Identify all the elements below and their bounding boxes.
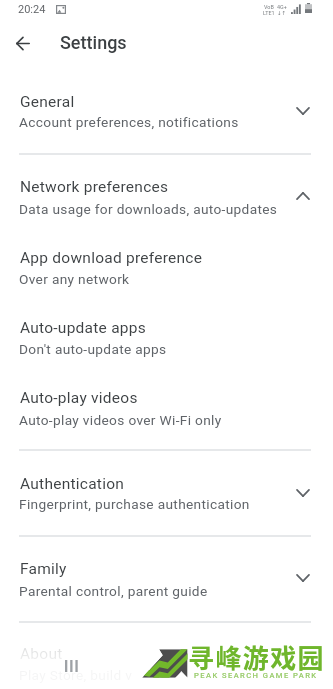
staticText: 4G+ [277, 4, 287, 10]
staticText: PEAK SEARCH GAME PARK [194, 671, 318, 680]
staticText: Over any network [19, 271, 130, 287]
staticText: Data usage for downloads, auto-updates [19, 201, 278, 217]
staticText: Family [20, 560, 67, 578]
staticText: Auto-play videos [20, 389, 138, 407]
staticText: LTE1 [263, 10, 275, 16]
button[interactable] [0, 461, 333, 509]
staticText: ↓↑ [277, 10, 287, 16]
button[interactable]: Expand section [288, 563, 318, 593]
button[interactable] [0, 305, 333, 353]
button[interactable]: Back [9, 30, 36, 57]
button[interactable] [0, 375, 333, 423]
button[interactable] [0, 632, 333, 680]
staticText: App download preference [20, 249, 203, 267]
staticText: Parental control, parent guide [19, 583, 208, 599]
staticText: Account preferences, notifications [19, 114, 239, 130]
staticText: Fingerprint, purchase authentication [19, 496, 250, 512]
staticText: VoB [264, 4, 274, 10]
button[interactable] [0, 546, 333, 594]
staticText: Network preferences [20, 178, 169, 196]
staticText: 寻峰游戏园 [188, 638, 326, 676]
button[interactable]: Expand section [288, 478, 318, 508]
button[interactable] [0, 235, 333, 283]
staticText: Auto-play videos over Wi-Fi only [19, 412, 222, 428]
staticText: Settings [60, 32, 127, 53]
staticText: About [20, 645, 63, 663]
button[interactable]: Expand section [288, 96, 318, 126]
staticText: Play Store, build v [19, 667, 133, 683]
button[interactable]: Recent apps [59, 654, 83, 678]
staticText: General [20, 93, 75, 111]
button[interactable] [0, 165, 333, 213]
button[interactable] [0, 79, 333, 127]
staticText: Authentication [20, 475, 125, 493]
button[interactable]: Collapse section [288, 181, 318, 211]
staticText: Don't auto-update apps [19, 341, 167, 357]
staticText: Auto-update apps [20, 319, 147, 337]
staticText: 20:24 [18, 3, 46, 16]
